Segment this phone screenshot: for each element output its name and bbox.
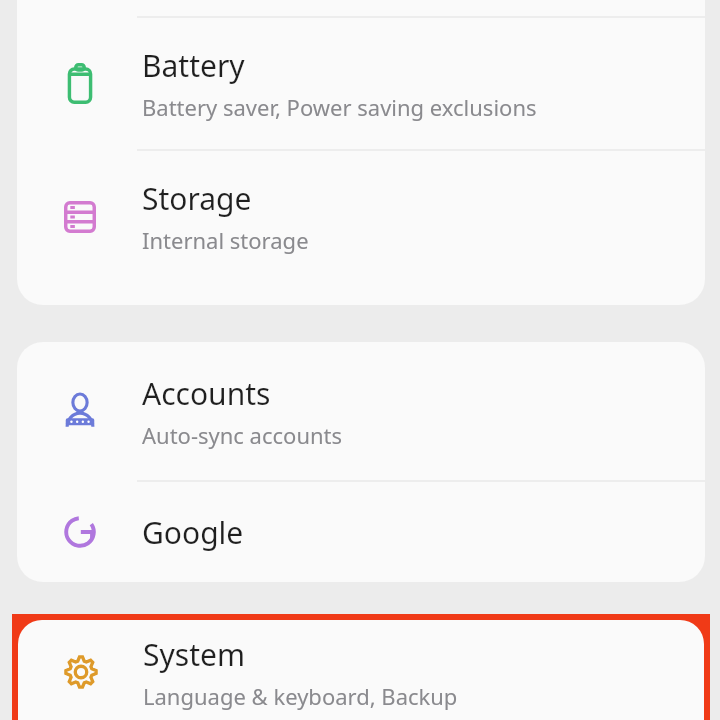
button[interactable]: Storage xyxy=(17,151,705,282)
staticText: Internal storage xyxy=(142,225,309,255)
staticText: Storage xyxy=(142,178,252,219)
staticText: System xyxy=(143,634,245,675)
staticText: Battery xyxy=(142,45,245,86)
button[interactable]: Battery xyxy=(17,18,705,149)
staticText: Battery saver, Power saving exclusions xyxy=(142,92,537,122)
staticText: Language & keyboard, Backup xyxy=(143,681,458,711)
button[interactable]: Google xyxy=(17,482,705,582)
staticText: Google xyxy=(142,512,244,553)
button[interactable]: System xyxy=(18,620,704,720)
staticText: Accounts xyxy=(142,373,271,414)
button[interactable]: Accounts xyxy=(17,342,705,480)
staticText: Auto-sync accounts xyxy=(142,420,343,450)
